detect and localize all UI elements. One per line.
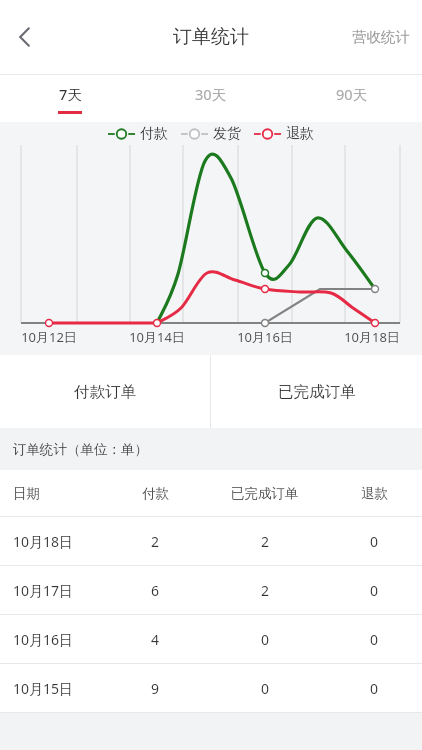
staticText: 0 [261,630,270,649]
staticText: 10月18日 [13,532,108,551]
staticText: 10月12日 [21,328,77,346]
staticText: 发货 [213,125,241,143]
staticText: 10月15日 [13,679,108,698]
staticText: 0 [370,679,379,698]
staticText: 退款 [286,125,314,143]
staticText: 9 [151,679,160,698]
staticText: 订单统计（单位：单） [13,441,148,458]
staticText: 2 [151,532,160,551]
button[interactable]: 付款订单 [0,355,210,428]
staticText: 0 [370,581,379,600]
staticText: 付款 [140,125,168,143]
staticText: 0 [370,532,379,551]
staticText: 已完成订单 [278,382,356,402]
staticText: 30天 [195,84,227,104]
button[interactable]: Back [2,14,48,60]
staticText: 日期 [13,485,108,502]
button[interactable]: 10月15日 [0,664,422,712]
staticText: 2 [261,581,270,600]
staticText: 已完成订单 [231,485,299,502]
staticText: 2 [261,532,270,551]
staticText: 营收统计 [352,28,410,46]
staticText: 0 [370,630,379,649]
staticText: 10月14日 [129,328,185,346]
staticText: 4 [151,630,160,649]
button[interactable]: 已完成订单 [211,355,422,428]
button[interactable]: 30天 [140,75,281,122]
staticText: 付款 [142,485,169,502]
button[interactable]: 7天 [0,75,140,122]
staticText: 10月17日 [13,581,108,600]
staticText: 10月16日 [237,328,293,346]
staticText: 10月16日 [13,630,108,649]
staticText: 退款 [361,485,388,502]
button[interactable]: 10月16日 [0,615,422,663]
staticText: 7天 [59,84,82,104]
button[interactable]: 营收统计 [340,16,422,58]
staticText: 6 [151,581,160,600]
staticText: 付款订单 [74,382,136,402]
staticText: 90天 [336,84,368,104]
button[interactable]: 10月18日 [0,517,422,565]
button[interactable]: 90天 [281,75,422,122]
staticText: 0 [261,679,270,698]
staticText: 10月18日 [344,328,400,346]
button[interactable]: 10月17日 [0,566,422,614]
staticText: 订单统计 [173,25,249,49]
